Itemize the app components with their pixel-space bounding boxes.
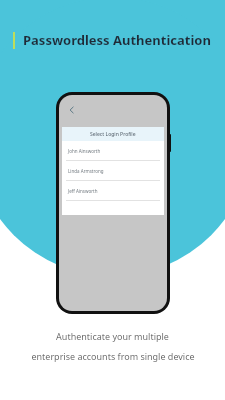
button[interactable]: John Ainsworth — [62, 141, 164, 161]
staticText: John Ainsworth — [68, 148, 101, 154]
staticText: Authenticate your multiple — [56, 330, 169, 342]
button[interactable]: Linda Armstrong — [62, 161, 164, 181]
staticText: Linda Armstrong — [68, 168, 104, 174]
staticText: Passwordless Authentication — [23, 31, 211, 49]
button[interactable]: Jeff Ainsworth — [62, 181, 164, 201]
staticText: enterprise accounts from single device — [31, 350, 195, 362]
staticText: Jeff Ainsworth — [68, 188, 98, 194]
button[interactable]: Back — [65, 103, 79, 117]
staticText: Select Login Profile — [90, 131, 136, 138]
